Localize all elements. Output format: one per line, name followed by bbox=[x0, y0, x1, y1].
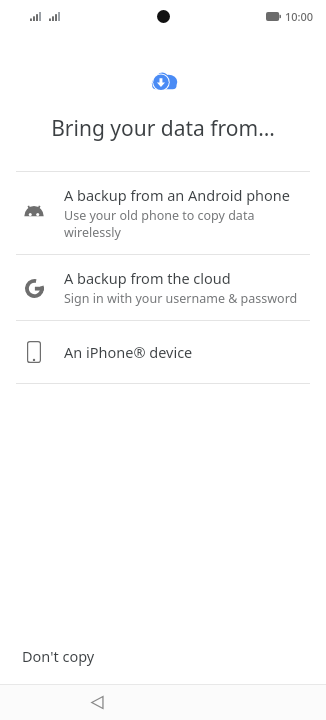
staticText: A backup from the cloud bbox=[64, 268, 231, 288]
staticText: Bring your data from… bbox=[0, 114, 326, 143]
staticText: Sign in with your username & password bbox=[64, 290, 298, 307]
button[interactable]: Back bbox=[82, 687, 112, 717]
staticText: Use your old phone to copy data wireless… bbox=[64, 207, 314, 241]
button[interactable]: An iPhone® device bbox=[0, 321, 326, 383]
button[interactable]: A backup from the cloud bbox=[0, 255, 326, 320]
staticText: 10:00 bbox=[285, 9, 314, 24]
staticText: An iPhone® device bbox=[64, 342, 193, 362]
staticText: A backup from an Android phone bbox=[64, 185, 290, 205]
button[interactable]: A backup from an Android phone bbox=[0, 172, 326, 254]
staticText: Don't copy bbox=[22, 646, 95, 666]
button[interactable]: Don't copy bbox=[0, 632, 326, 684]
